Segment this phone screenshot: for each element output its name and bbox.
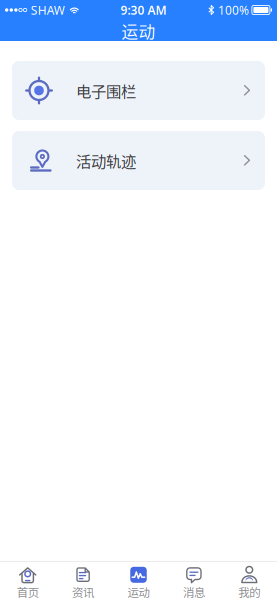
- button[interactable]: 我的: [222, 562, 277, 600]
- staticText: SHAW: [31, 2, 65, 18]
- staticText: 电子围栏: [76, 79, 136, 102]
- staticText: 活动轨迹: [76, 149, 136, 172]
- staticText: 100%: [218, 2, 249, 18]
- button[interactable]: 首页: [0, 562, 55, 600]
- staticText: 首页: [17, 584, 39, 600]
- button[interactable]: 电子围栏: [12, 61, 265, 120]
- staticText: 运动: [121, 19, 155, 43]
- staticText: 9:30 AM: [121, 2, 167, 18]
- button[interactable]: 消息: [166, 562, 222, 600]
- button[interactable]: 资讯: [55, 562, 111, 600]
- button[interactable]: 活动轨迹: [12, 131, 265, 190]
- staticText: 运动: [127, 584, 149, 600]
- staticText: 消息: [183, 584, 205, 600]
- button[interactable]: 运动: [111, 562, 166, 600]
- staticText: 资讯: [72, 584, 94, 600]
- staticText: 我的: [238, 584, 260, 600]
